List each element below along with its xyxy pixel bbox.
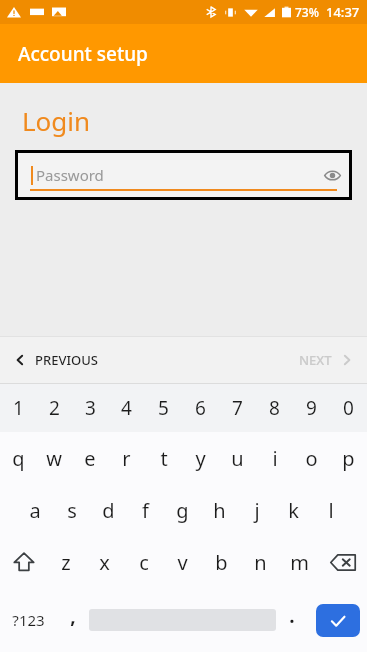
button[interactable]: v [163,536,202,588]
staticText: 6 [195,395,206,421]
staticText: m [290,549,309,576]
staticText: 1 [13,395,24,421]
button[interactable]: Enter [308,588,367,652]
button[interactable]: Backspace [319,536,367,588]
button[interactable]: Password [18,153,349,197]
button[interactable]: . [276,588,308,652]
button[interactable]: i [256,432,293,484]
staticText: i [272,445,278,472]
staticText: q [12,445,25,472]
staticText: t [160,445,168,472]
button[interactable]: k [275,484,312,536]
staticText: a [29,497,41,524]
button[interactable]: 7 [219,384,256,432]
button[interactable]: e [72,432,108,484]
button[interactable]: 2 [36,384,72,432]
staticText: n [254,549,267,576]
staticText: x [99,549,110,576]
button[interactable]: NEXT [184,337,367,383]
button[interactable]: x [85,536,124,588]
staticText: k [288,497,299,524]
staticText: b [215,549,228,576]
staticText: u [231,445,244,472]
button[interactable]: z [47,536,85,588]
button[interactable]: y [182,432,219,484]
button[interactable]: r [108,432,145,484]
staticText: ?123 [12,610,45,630]
staticText: g [176,497,189,524]
staticText: 14:37 [326,3,360,21]
staticText: y [195,445,206,472]
button[interactable]: g [164,484,201,536]
staticText: . [289,603,295,629]
staticText: 8 [269,395,280,421]
button[interactable]: 8 [256,384,293,432]
button[interactable]: 4 [108,384,145,432]
staticText: o [305,445,318,472]
button[interactable]: h [201,484,238,536]
staticText: p [342,445,355,472]
staticText: h [213,497,226,524]
button[interactable]: 6 [182,384,219,432]
button[interactable]: b [202,536,241,588]
staticText: 5 [158,395,169,421]
staticText: 2 [49,395,60,421]
staticText: c [139,549,149,576]
staticText: NEXT [299,351,332,369]
staticText: f [142,497,149,524]
staticText: PREVIOUS [35,351,98,369]
button[interactable]: n [241,536,280,588]
staticText: d [102,497,115,524]
staticText: s [67,497,77,524]
button[interactable]: PREVIOUS [0,337,184,383]
button[interactable]: 0 [330,384,367,432]
staticText: , [70,603,76,629]
button[interactable]: u [219,432,256,484]
button[interactable]: t [145,432,182,484]
staticText: l [328,497,334,524]
staticText: j [254,497,260,524]
button[interactable]: 3 [72,384,108,432]
button[interactable]: , [56,588,89,652]
button[interactable]: o [293,432,330,484]
button[interactable]: 5 [145,384,182,432]
button[interactable]: 1 [0,384,36,432]
button[interactable]: m [280,536,319,588]
button[interactable] [89,588,276,652]
button[interactable]: Shift [0,536,47,588]
staticText: r [122,445,131,472]
button[interactable]: c [124,536,163,588]
staticText: 0 [343,395,354,421]
button[interactable]: p [330,432,367,484]
staticText: 4 [121,395,132,421]
button[interactable]: ?123 [0,588,56,652]
staticText: 9 [306,395,317,421]
button[interactable]: d [90,484,127,536]
staticText: 3 [85,395,96,421]
button[interactable]: s [53,484,90,536]
button[interactable]: j [238,484,275,536]
staticText: 7 [232,395,243,421]
button[interactable]: l [312,484,349,536]
button[interactable]: 9 [293,384,330,432]
staticText: Password [36,165,104,185]
button[interactable]: Show password [315,158,349,192]
staticText: w [46,445,62,472]
staticText: e [84,445,96,472]
staticText: Account setup [18,41,148,67]
staticText: z [61,549,71,576]
button[interactable]: q [0,432,36,484]
staticText: 73% [295,4,319,20]
staticText: v [177,549,188,576]
staticText: Login [22,103,91,138]
button[interactable]: w [36,432,72,484]
button[interactable]: a [17,484,53,536]
button[interactable]: f [127,484,164,536]
